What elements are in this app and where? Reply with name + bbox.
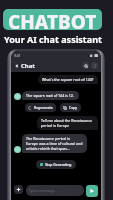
staticText: Regenerate (34, 105, 53, 110)
button[interactable]: Send (86, 185, 98, 197)
staticText: CHATBOT (8, 9, 97, 30)
staticText: The square root of 144 is 12. (26, 93, 75, 98)
button[interactable]: Back (14, 63, 20, 69)
staticText: Copy (69, 105, 78, 110)
staticText: Your AI chat assistant (4, 33, 102, 45)
staticText: Type a message... (29, 188, 58, 193)
staticText: Stop Generating (45, 162, 72, 167)
staticText: 9:41 (14, 53, 21, 58)
staticText: Tell me about the Renaissance period in … (41, 118, 94, 128)
button[interactable]: More options (91, 62, 98, 69)
button[interactable]: Regenerate (25, 103, 56, 112)
button[interactable]: Copy (60, 103, 81, 112)
staticText: Chat (21, 62, 35, 70)
button[interactable]: What's the square root of 144? (38, 75, 98, 84)
button[interactable]: Search (82, 62, 89, 69)
staticText: The Renaissance period in Europe was a t… (26, 136, 83, 151)
button[interactable]: Add attachment (14, 185, 23, 194)
button[interactable]: The Renaissance period in Europe was a t… (22, 134, 87, 153)
button[interactable]: Stop Generating (36, 160, 76, 169)
button[interactable]: Type a message... (26, 185, 84, 196)
button[interactable]: CHATBOT (3, 9, 102, 30)
button[interactable]: The square root of 144 is 12. (22, 91, 79, 100)
button[interactable]: Tell me about the Renaissance period in … (37, 116, 98, 130)
staticText: What's the square root of 144? (42, 77, 94, 82)
